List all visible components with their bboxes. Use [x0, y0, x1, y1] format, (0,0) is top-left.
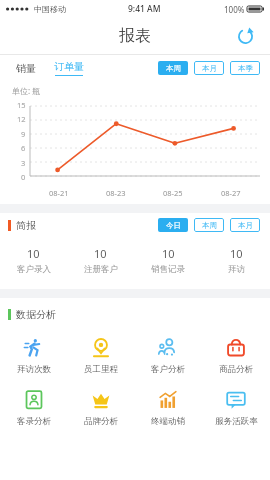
- button[interactable]: 销量: [14, 62, 38, 75]
- staticText: 拜访次数: [17, 364, 51, 375]
- button[interactable]: 本月: [230, 218, 260, 232]
- staticText: 本季: [238, 64, 253, 73]
- staticText: 订单量: [54, 60, 84, 73]
- button[interactable]: 今日: [158, 218, 188, 232]
- staticText: 6: [21, 143, 26, 153]
- staticText: 报表: [119, 26, 151, 46]
- staticText: 注册客户: [84, 264, 118, 275]
- staticText: 10: [230, 246, 243, 261]
- button[interactable]: 订单量: [52, 60, 86, 76]
- staticText: 本月: [238, 221, 253, 230]
- button[interactable]: 本季: [230, 61, 260, 75]
- button[interactable]: 10: [202, 246, 270, 275]
- staticText: 客录分析: [17, 416, 51, 427]
- staticText: 客户录入: [17, 264, 51, 275]
- button[interactable]: Refresh: [232, 23, 258, 49]
- button[interactable]: 客户分析: [134, 337, 202, 375]
- button[interactable]: 员工里程: [67, 337, 134, 375]
- staticText: 10: [94, 246, 107, 261]
- button[interactable]: 拜访次数: [0, 337, 67, 375]
- button[interactable]: 10: [0, 246, 67, 275]
- button[interactable]: 终端动销: [134, 389, 202, 427]
- button[interactable]: 服务活跃率: [202, 389, 270, 427]
- staticText: 中国移动: [34, 4, 66, 14]
- staticText: 本周: [202, 221, 217, 230]
- staticText: 本月: [202, 64, 217, 73]
- staticText: 12: [17, 114, 26, 124]
- staticText: 本周: [166, 64, 181, 73]
- staticText: 员工里程: [84, 364, 118, 375]
- staticText: 08-25: [163, 188, 183, 198]
- staticText: 销售记录: [151, 264, 185, 275]
- button[interactable]: 10: [67, 246, 134, 275]
- staticText: 商品分析: [219, 364, 253, 375]
- staticText: 服务活跃率: [215, 416, 258, 427]
- button[interactable]: 本周: [158, 61, 188, 75]
- button[interactable]: 客录分析: [0, 389, 67, 427]
- staticText: 10: [27, 246, 40, 261]
- staticText: 品牌分析: [84, 416, 118, 427]
- staticText: 数据分析: [16, 308, 56, 321]
- button[interactable]: 品牌分析: [67, 389, 134, 427]
- staticText: 终端动销: [151, 416, 185, 427]
- staticText: 08-23: [106, 188, 126, 198]
- staticText: 08-27: [221, 188, 241, 198]
- staticText: 3: [21, 158, 26, 168]
- staticText: 9:41 AM: [128, 3, 161, 15]
- staticText: 10: [162, 246, 175, 261]
- button[interactable]: 10: [134, 246, 202, 275]
- staticText: 单位: 瓶: [12, 85, 41, 96]
- staticText: 08-21: [49, 188, 69, 198]
- staticText: 9: [21, 129, 26, 139]
- staticText: 拜访: [228, 264, 245, 275]
- staticText: 今日: [166, 221, 181, 230]
- staticText: 15: [17, 100, 26, 110]
- button[interactable]: 本周: [194, 218, 224, 232]
- staticText: 简报: [16, 219, 36, 232]
- staticText: 销量: [16, 62, 36, 75]
- staticText: 100%: [224, 4, 245, 15]
- button[interactable]: 商品分析: [202, 337, 270, 375]
- staticText: 0: [21, 172, 26, 182]
- staticText: 客户分析: [151, 364, 185, 375]
- button[interactable]: 本月: [194, 61, 224, 75]
